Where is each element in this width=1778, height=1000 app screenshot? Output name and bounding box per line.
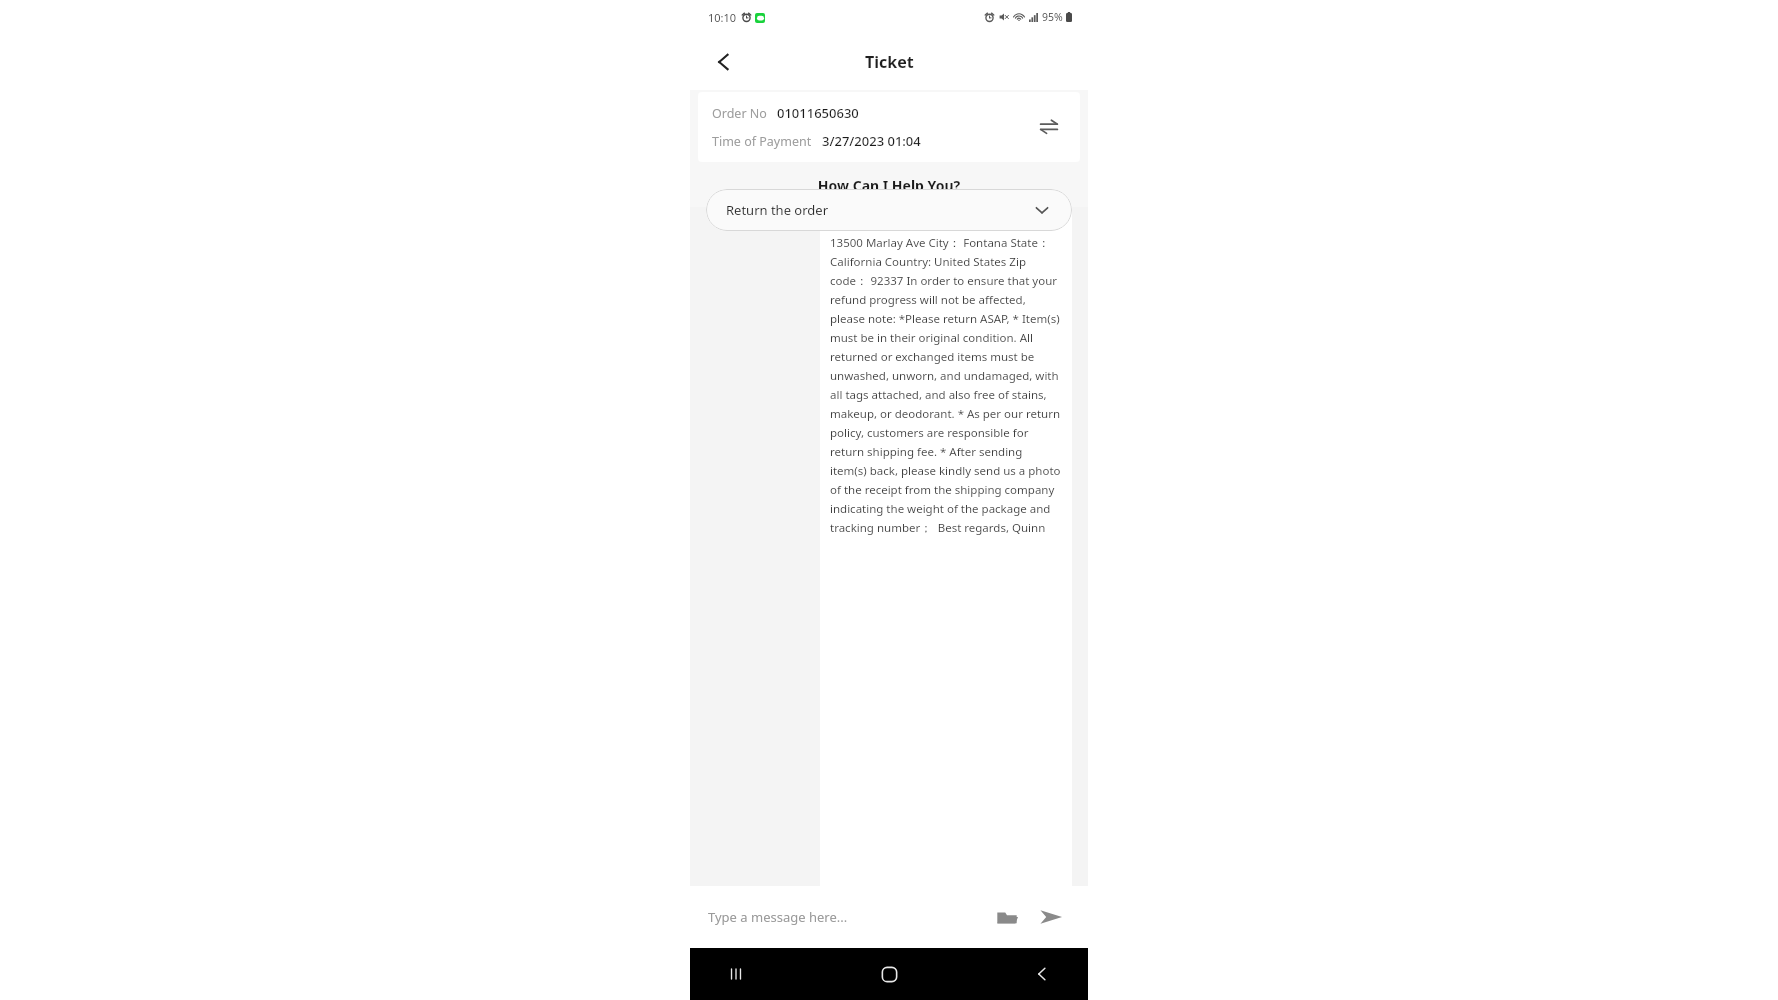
staticText: ectly according to the address below: Na…	[830, 197, 1062, 535]
button[interactable]: Recents	[712, 950, 760, 998]
button[interactable]: Back	[702, 40, 746, 84]
staticText: Order No	[712, 105, 767, 122]
staticText: How Can I Help You?	[690, 176, 1088, 195]
staticText: Return the order	[726, 201, 829, 219]
button[interactable]: Type a message here...	[708, 908, 988, 926]
staticText: 3/27/2023 01:04	[822, 132, 921, 150]
button[interactable]: Home	[865, 950, 913, 998]
staticText: Ticket	[865, 51, 914, 73]
staticText: Time of Payment	[712, 133, 812, 150]
button[interactable]: Attach file	[988, 898, 1026, 936]
button[interactable]: Switch order	[1032, 110, 1066, 144]
button[interactable]: Send	[1032, 898, 1070, 936]
staticText: Type a message here...	[708, 908, 848, 926]
button[interactable]: Return the order	[706, 189, 1072, 231]
staticText: 10:10	[708, 10, 737, 25]
staticText: 95%	[1042, 10, 1063, 24]
button[interactable]: Back	[1018, 950, 1066, 998]
staticText: 01011650630	[777, 104, 859, 122]
